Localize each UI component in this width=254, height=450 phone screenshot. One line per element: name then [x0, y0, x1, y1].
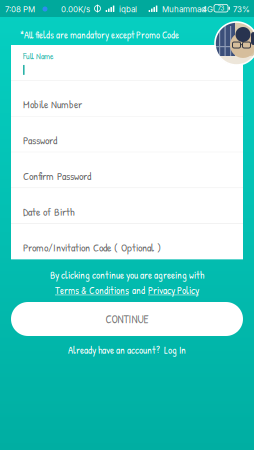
staticText: Date of Birth [23, 204, 75, 219]
staticText: Mobile Number [23, 97, 82, 112]
staticText: 0.00K/s [61, 4, 90, 14]
staticText: Promo/Invitation Code ( Optional ) [23, 240, 161, 255]
button[interactable]: Password [11, 117, 243, 152]
button[interactable]: Date of Birth [11, 188, 243, 223]
staticText: 4G [202, 4, 213, 14]
button[interactable]: Privacy Policy [148, 283, 199, 297]
button[interactable]: Mobile Number [11, 81, 243, 116]
staticText: 73 [217, 4, 224, 12]
staticText: 73% [233, 4, 250, 14]
staticText: Privacy Policy [148, 283, 199, 297]
button[interactable]: Already have an account? Log In [0, 343, 254, 357]
staticText: and [132, 283, 145, 297]
staticText: By clicking continue you are agreeing wi… [50, 268, 204, 282]
button[interactable]: Promo/Invitation Code ( Optional ) [11, 224, 243, 259]
staticText: Terms & Conditions [55, 283, 129, 297]
staticText: Full Name [23, 50, 54, 62]
staticText: CONTINUE [105, 311, 148, 327]
staticText: Already have an account? Log In [68, 343, 186, 357]
staticText: 7:08 PM [5, 4, 35, 14]
button[interactable]: CONTINUE [11, 302, 243, 336]
staticText: Confirm Password [23, 168, 91, 183]
button[interactable]: Terms & Conditions [55, 283, 129, 297]
staticText: iqbal [119, 4, 137, 14]
button[interactable]: Full Name [11, 45, 243, 80]
staticText: Password [23, 133, 57, 148]
staticText: Muhammad [162, 4, 206, 14]
staticText: *All fields are mandatory except Promo C… [20, 28, 179, 41]
button[interactable]: Confirm Password [11, 152, 243, 188]
